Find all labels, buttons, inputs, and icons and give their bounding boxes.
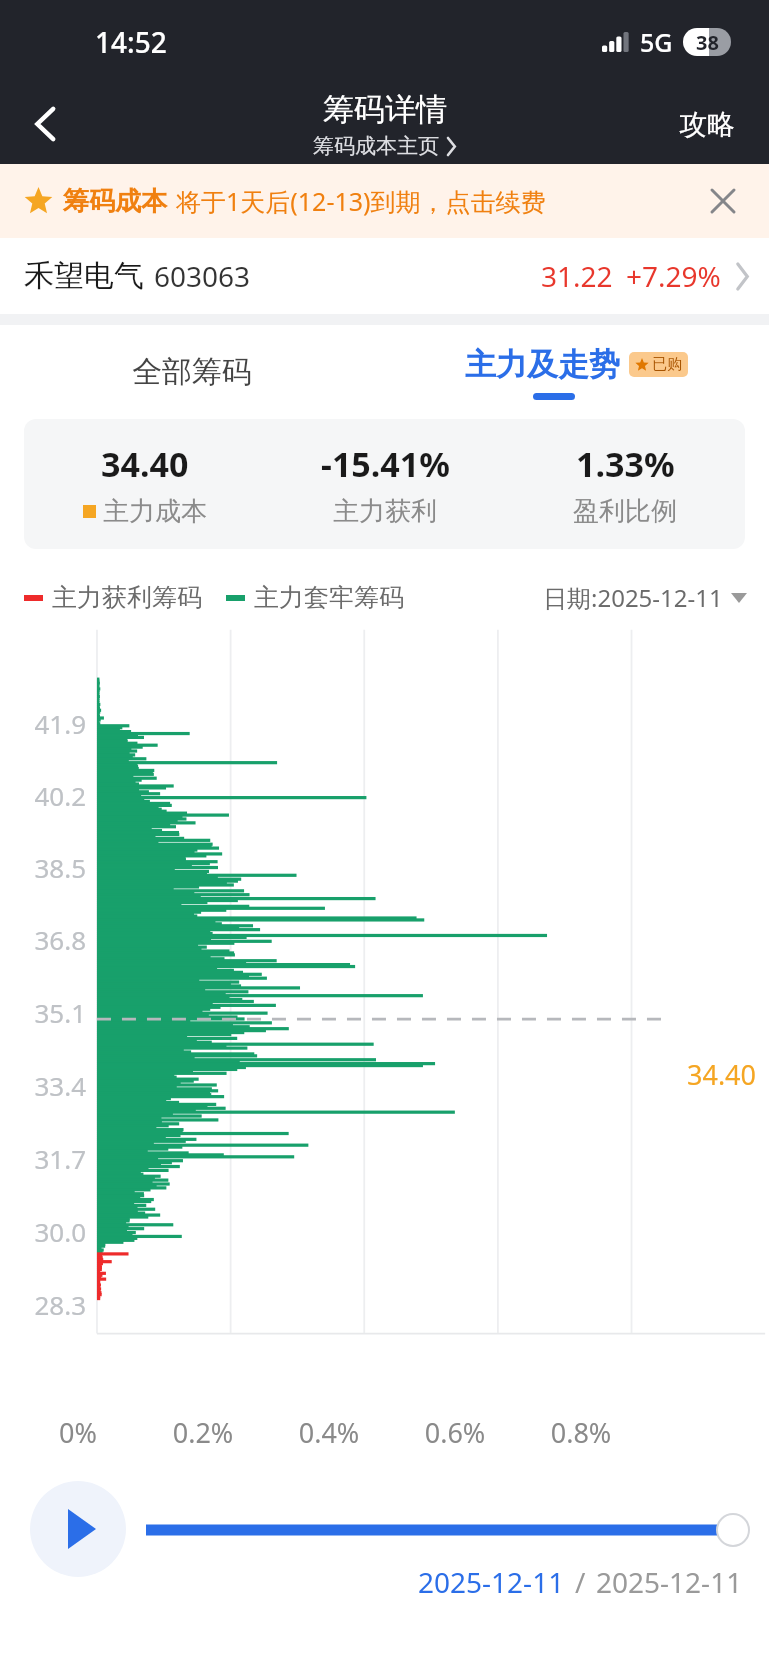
staticText: 30.0 bbox=[18, 1214, 86, 1249]
staticText: 36.8 bbox=[18, 922, 86, 957]
staticText: 全部筹码 bbox=[132, 353, 252, 391]
button[interactable]: 筹码成本 bbox=[24, 184, 546, 218]
staticText: 38.5 bbox=[18, 850, 86, 885]
staticText: 34.40 bbox=[101, 441, 189, 487]
staticText: 603063 bbox=[154, 257, 251, 295]
staticText: 主力及走势 bbox=[465, 345, 620, 384]
staticText: 0.6% bbox=[413, 1414, 497, 1451]
staticText: 2025-12-11 bbox=[418, 1563, 565, 1601]
button[interactable]: Close banner bbox=[701, 179, 745, 223]
button[interactable]: 筹码成本主页 bbox=[313, 133, 456, 159]
staticText: 主力成本 bbox=[103, 495, 207, 528]
staticText: 已购 bbox=[652, 355, 682, 374]
staticText: 0% bbox=[36, 1414, 120, 1451]
staticText: 33.4 bbox=[18, 1068, 86, 1103]
staticText: 2025-12-11 bbox=[596, 1563, 743, 1601]
button[interactable] bbox=[146, 1515, 759, 1545]
staticText: 34.40 bbox=[687, 1056, 757, 1093]
staticText: / bbox=[575, 1563, 586, 1601]
staticText: -15.41% bbox=[321, 441, 450, 487]
staticText: 主力套牢筹码 bbox=[254, 582, 404, 613]
button[interactable]: 主力及走势 bbox=[384, 325, 769, 419]
button[interactable]: Back bbox=[0, 84, 92, 164]
staticText: 筹码成本主页 bbox=[313, 133, 439, 159]
staticText: 盈利比例 bbox=[573, 495, 677, 528]
staticText: 0.2% bbox=[161, 1414, 245, 1451]
staticText: 0.8% bbox=[539, 1414, 623, 1451]
button[interactable]: 全部筹码 bbox=[0, 325, 384, 419]
staticText: 31.22 bbox=[541, 257, 613, 295]
staticText: 40.2 bbox=[18, 778, 86, 813]
staticText: 35.1 bbox=[18, 995, 86, 1030]
staticText: 14:52 bbox=[95, 23, 167, 61]
staticText: 38 bbox=[696, 29, 719, 56]
staticText: 禾望电气 bbox=[24, 257, 144, 295]
staticText: 5G bbox=[640, 25, 673, 59]
staticText: 主力获利 bbox=[333, 495, 437, 528]
staticText: 主力获利筹码 bbox=[52, 582, 202, 613]
button[interactable]: 日期:2025-12-11 bbox=[543, 581, 747, 614]
button[interactable]: 攻略 bbox=[669, 97, 745, 152]
staticText: 31.7 bbox=[18, 1141, 86, 1176]
staticText: +7.29% bbox=[626, 257, 721, 295]
staticText: 筹码成本 bbox=[63, 185, 167, 218]
button[interactable]: 禾望电气 bbox=[0, 238, 769, 314]
staticText: 日期:2025-12-11 bbox=[543, 581, 723, 614]
staticText: 攻略 bbox=[679, 107, 735, 142]
staticText: 28.3 bbox=[18, 1287, 86, 1322]
staticText: 0.4% bbox=[287, 1414, 371, 1451]
button[interactable]: Play bbox=[30, 1481, 126, 1577]
staticText: 41.9 bbox=[18, 706, 86, 741]
staticText: 1.33% bbox=[576, 441, 675, 487]
staticText: 筹码详情 bbox=[323, 90, 447, 129]
staticText: 将于1天后(12-13)到期，点击续费 bbox=[176, 184, 546, 218]
